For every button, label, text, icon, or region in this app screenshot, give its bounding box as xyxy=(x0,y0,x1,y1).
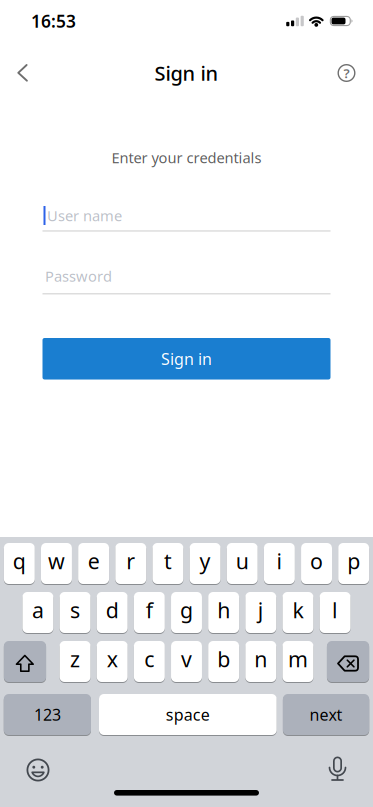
button[interactable]: 123 xyxy=(4,694,91,735)
button[interactable]: g xyxy=(171,592,202,633)
button[interactable]: Emoji xyxy=(26,758,49,781)
button[interactable]: c xyxy=(134,641,165,682)
button[interactable]: d xyxy=(97,592,128,633)
button[interactable]: i xyxy=(264,543,295,584)
staticText: h xyxy=(217,596,230,624)
button[interactable]: Shift xyxy=(4,641,46,682)
staticText: t xyxy=(164,547,172,575)
button[interactable]: Delete xyxy=(327,641,369,682)
staticText: b xyxy=(217,645,230,673)
staticText: q xyxy=(13,547,26,575)
textField[interactable]: Password xyxy=(42,266,330,294)
staticText: g xyxy=(180,596,193,624)
staticText: s xyxy=(70,596,80,624)
staticText: 16:53 xyxy=(31,9,76,32)
staticText: m xyxy=(288,645,308,673)
staticText: o xyxy=(310,547,323,575)
staticText: i xyxy=(276,547,282,575)
button[interactable]: f xyxy=(134,592,165,633)
button[interactable]: Help xyxy=(337,64,355,82)
button[interactable]: Dictation xyxy=(326,757,348,783)
button[interactable]: q xyxy=(4,543,35,584)
staticText: 123 xyxy=(34,704,61,725)
staticText: r xyxy=(126,547,135,575)
staticText: f xyxy=(146,596,153,624)
staticText: v xyxy=(181,645,192,673)
button[interactable]: next xyxy=(283,694,369,735)
button[interactable]: u xyxy=(227,543,258,584)
staticText: ? xyxy=(343,64,349,82)
button[interactable]: z xyxy=(60,641,90,682)
button[interactable]: o xyxy=(301,543,332,584)
staticText: Enter your credentials xyxy=(111,148,261,167)
button[interactable]: Back xyxy=(18,65,27,81)
button[interactable]: b xyxy=(208,641,239,682)
button[interactable]: m xyxy=(282,641,313,682)
staticText: Sign in xyxy=(154,60,218,86)
staticText: z xyxy=(70,645,80,673)
staticText: d xyxy=(106,596,119,624)
button[interactable]: x xyxy=(97,641,128,682)
button[interactable]: s xyxy=(60,592,90,633)
button[interactable]: p xyxy=(338,543,369,584)
staticText: e xyxy=(88,547,100,575)
staticText: x xyxy=(107,645,118,673)
staticText: Password xyxy=(45,266,112,286)
button[interactable]: j xyxy=(245,592,276,633)
staticText: j xyxy=(258,596,264,624)
staticText: u xyxy=(236,547,249,575)
button[interactable]: y xyxy=(190,543,220,584)
button[interactable]: w xyxy=(41,543,72,584)
staticText: a xyxy=(32,596,44,624)
staticText: k xyxy=(292,596,303,624)
button[interactable]: v xyxy=(171,641,202,682)
staticText: l xyxy=(332,596,338,624)
staticText: c xyxy=(144,645,154,673)
staticText: User name xyxy=(47,206,122,225)
staticText: Sign in xyxy=(161,348,212,369)
staticText: w xyxy=(48,547,65,575)
button[interactable]: r xyxy=(115,543,146,584)
button[interactable]: a xyxy=(22,592,53,633)
button[interactable]: t xyxy=(152,543,183,584)
button[interactable]: h xyxy=(208,592,239,633)
button[interactable]: Sign in xyxy=(42,338,330,379)
staticText: y xyxy=(200,547,211,575)
button[interactable]: e xyxy=(78,543,109,584)
button[interactable]: space xyxy=(99,694,277,735)
staticText: p xyxy=(347,547,360,575)
button[interactable]: n xyxy=(245,641,276,682)
button[interactable]: k xyxy=(282,592,313,633)
textField[interactable]: User name xyxy=(42,205,330,232)
staticText: n xyxy=(254,645,267,673)
staticText: next xyxy=(309,704,342,725)
staticText: space xyxy=(166,704,210,725)
button[interactable]: l xyxy=(320,592,350,633)
